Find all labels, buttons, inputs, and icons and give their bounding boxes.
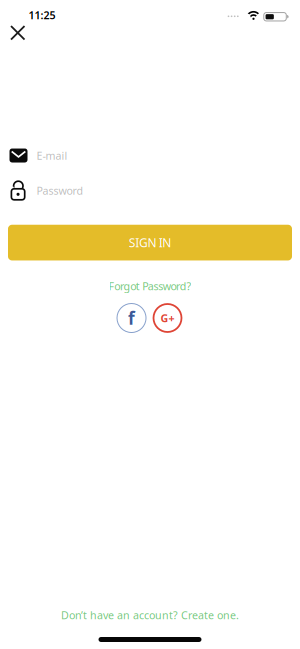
staticText: G+ [160, 311, 174, 325]
staticText: f [128, 306, 135, 329]
staticText: Don’t have an account? Create one. [61, 608, 239, 622]
button[interactable]: Forgot Password? [103, 276, 197, 296]
staticText: Forgot Password? [109, 279, 191, 293]
button[interactable]: E-mail [0, 143, 300, 167]
staticText: Password [36, 183, 83, 198]
button[interactable]: Sign in with Facebook [117, 303, 146, 332]
button[interactable]: Password [0, 178, 300, 202]
button[interactable]: Don’t have an account? Create one. [55, 605, 245, 625]
button[interactable]: Sign in with Google [153, 304, 181, 332]
staticText: SIGN IN [129, 235, 171, 250]
staticText: E-mail [36, 148, 67, 163]
button[interactable]: SIGN IN [8, 225, 292, 260]
staticText: 11:25 [28, 8, 55, 22]
button[interactable]: Close [7, 22, 28, 43]
